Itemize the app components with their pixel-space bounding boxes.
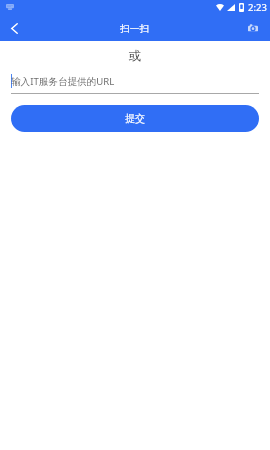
staticText: 2:23 [248, 1, 267, 14]
staticText: 扫一扫 [120, 23, 150, 35]
staticText: 提交 [125, 112, 145, 125]
button[interactable]: Camera [243, 18, 263, 38]
staticText: 输入IT服务台提供的URL [11, 75, 115, 88]
button[interactable]: Back [2, 16, 26, 40]
button[interactable]: 输入IT服务台提供的URL [0, 70, 270, 94]
staticText: 或 [0, 48, 270, 64]
button[interactable]: 提交 [11, 105, 259, 132]
